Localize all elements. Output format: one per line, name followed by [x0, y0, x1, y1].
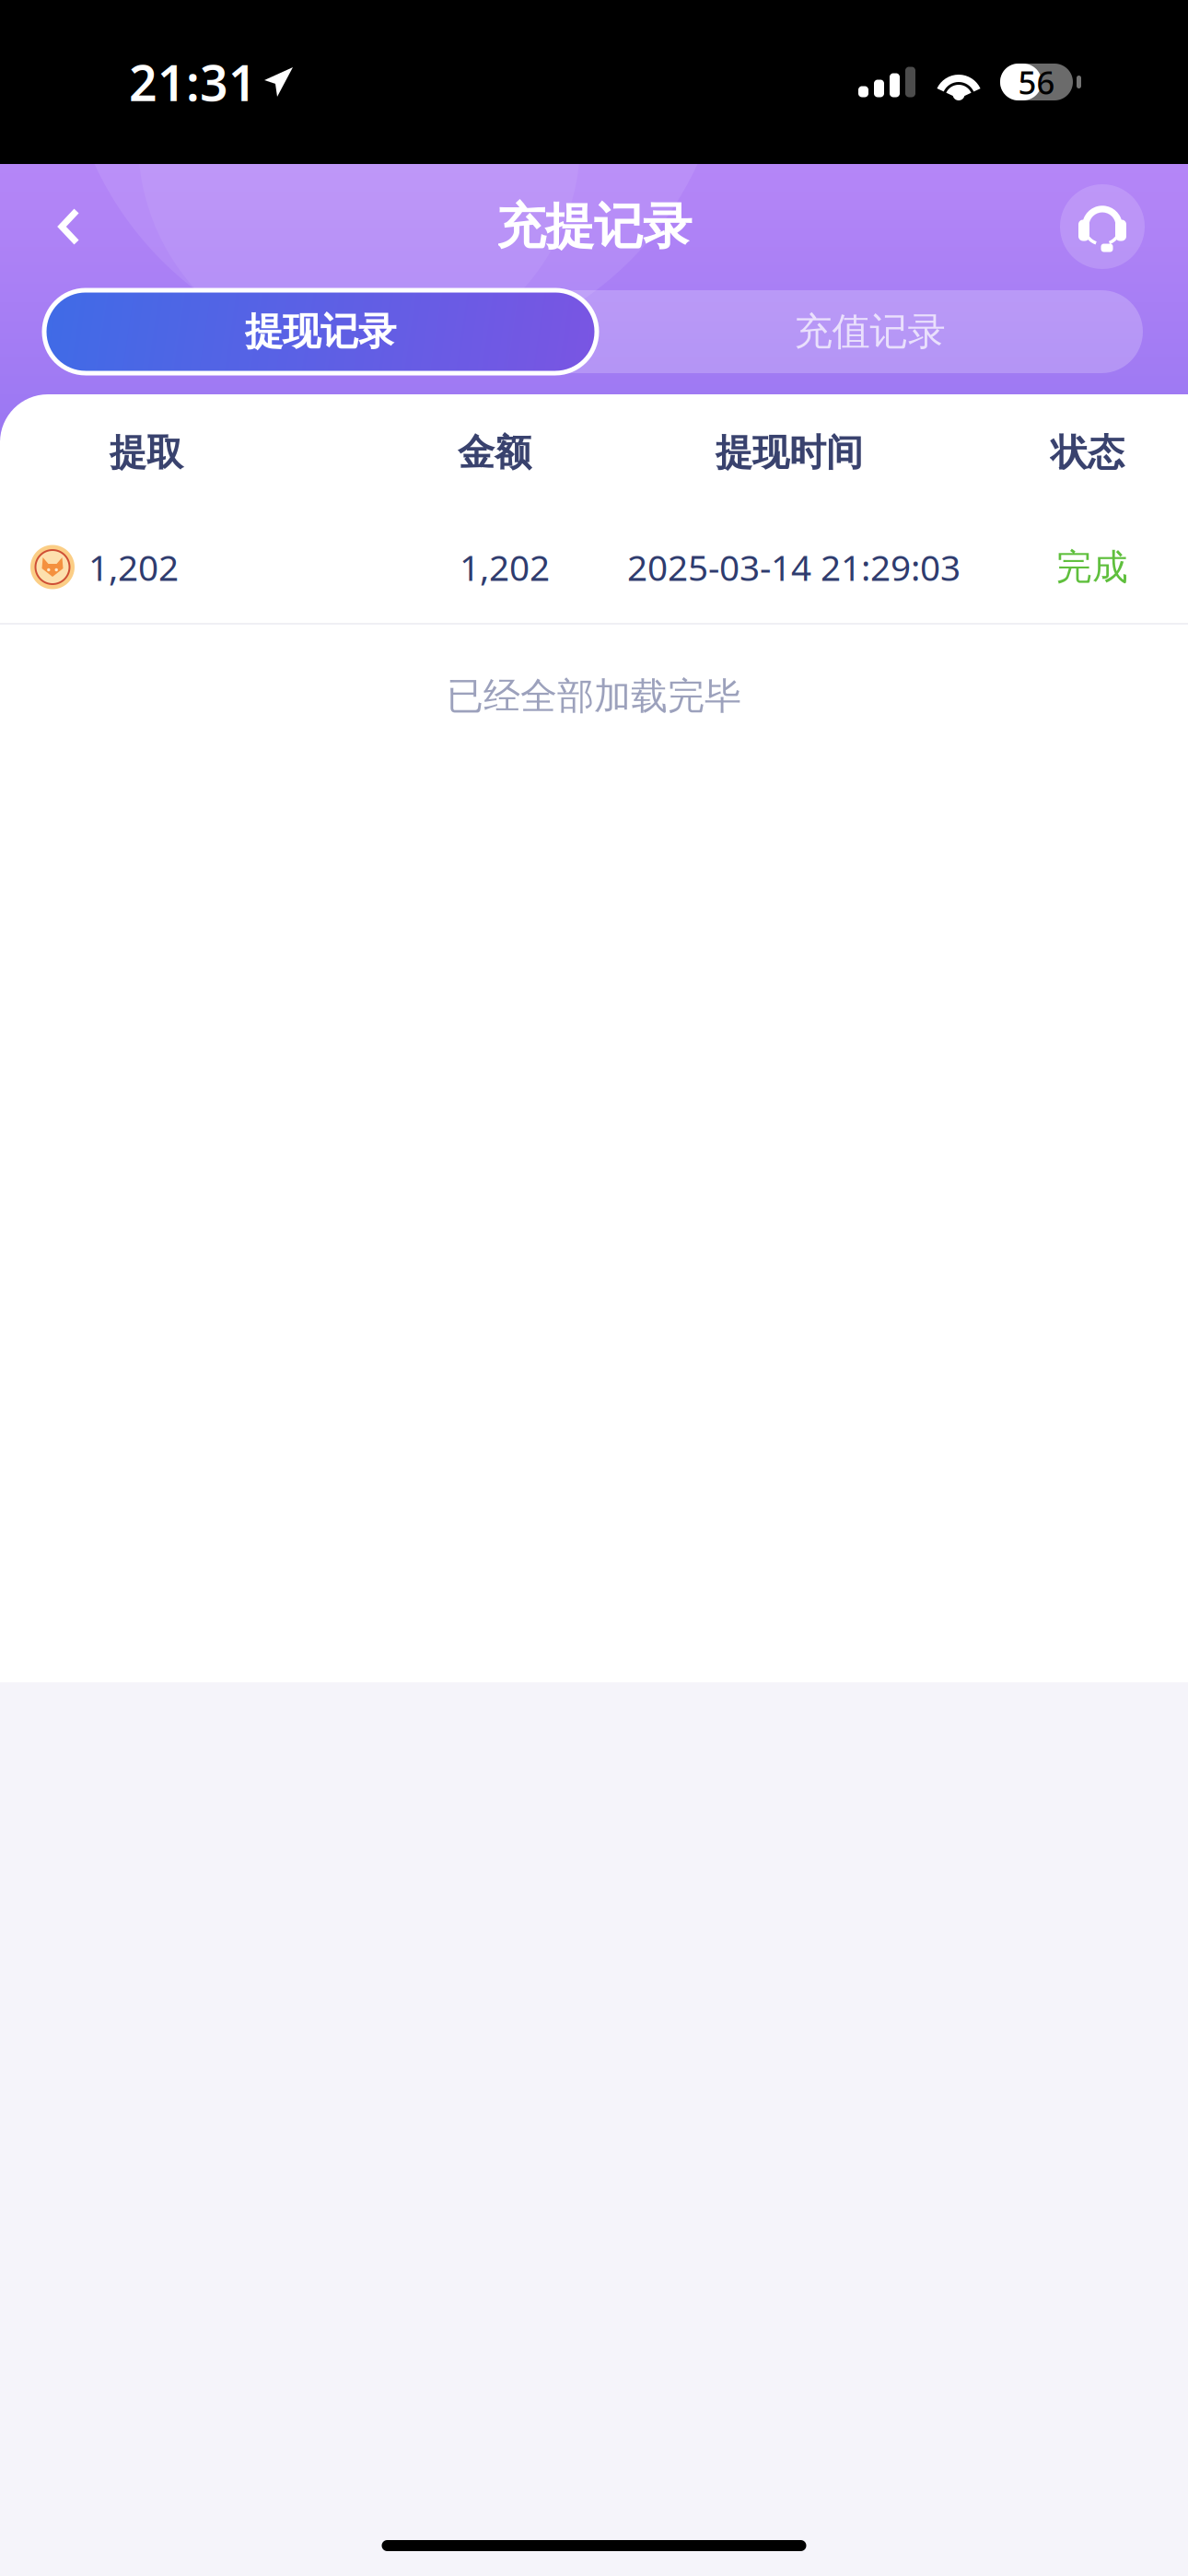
staticText: 已经全部加载完毕: [447, 673, 741, 719]
staticText: 1,202: [88, 543, 179, 591]
staticText: 21:31: [129, 49, 257, 115]
button[interactable]: 提现记录: [44, 290, 597, 373]
button[interactable]: Customer service: [1052, 182, 1153, 271]
staticText: 充值记录: [794, 308, 945, 355]
button[interactable]: 1,202: [0, 511, 1188, 623]
button[interactable]: Back: [18, 182, 120, 271]
staticText: 1,202: [460, 543, 550, 591]
staticText: 2025-03-14 21:29:03: [627, 543, 961, 591]
staticText: 56: [1018, 61, 1055, 103]
staticText: 提现时间: [716, 430, 863, 475]
staticText: 提取: [110, 430, 183, 475]
staticText: 充提记录: [496, 196, 692, 257]
staticText: 完成: [1056, 545, 1128, 589]
staticText: 提现记录: [245, 308, 396, 355]
staticText: 状态: [1051, 430, 1124, 475]
staticText: 金额: [458, 430, 531, 475]
button[interactable]: 充值记录: [597, 290, 1143, 373]
